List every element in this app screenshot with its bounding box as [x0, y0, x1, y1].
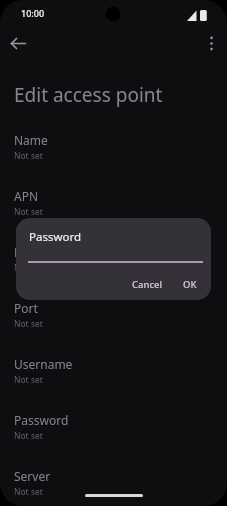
staticText: Proxy: [14, 244, 46, 260]
staticText: OK: [183, 278, 197, 291]
button[interactable]: Server: [0, 461, 227, 505]
staticText: Not set: [14, 374, 43, 386]
staticText: Not set: [14, 318, 43, 330]
button[interactable]: More options: [198, 30, 225, 57]
staticText: Server: [14, 468, 51, 484]
button[interactable]: Name: [0, 125, 227, 169]
button[interactable]: OK: [176, 274, 204, 295]
staticText: Name: [14, 132, 48, 148]
staticText: 10:00: [21, 7, 45, 19]
staticText: Password: [14, 412, 69, 428]
button[interactable]: Username: [0, 349, 227, 393]
button[interactable]: APN: [0, 181, 227, 225]
staticText: Not set: [14, 150, 43, 162]
staticText: Not set: [14, 206, 43, 218]
button[interactable]: Cancel: [125, 274, 170, 295]
button[interactable]: Proxy: [0, 237, 227, 281]
staticText: Port: [14, 300, 38, 316]
button[interactable]: Password: [0, 405, 227, 449]
staticText: Password: [29, 229, 82, 245]
staticText: Cancel: [132, 278, 163, 291]
staticText: Username: [14, 356, 73, 372]
staticText: APN: [14, 188, 39, 204]
button[interactable]: Back: [5, 30, 32, 57]
staticText: Not set: [14, 262, 43, 274]
button[interactable]: Port: [0, 293, 227, 337]
staticText: Edit access point: [14, 82, 163, 108]
staticText: Not set: [14, 486, 43, 498]
staticText: Not set: [14, 430, 43, 442]
